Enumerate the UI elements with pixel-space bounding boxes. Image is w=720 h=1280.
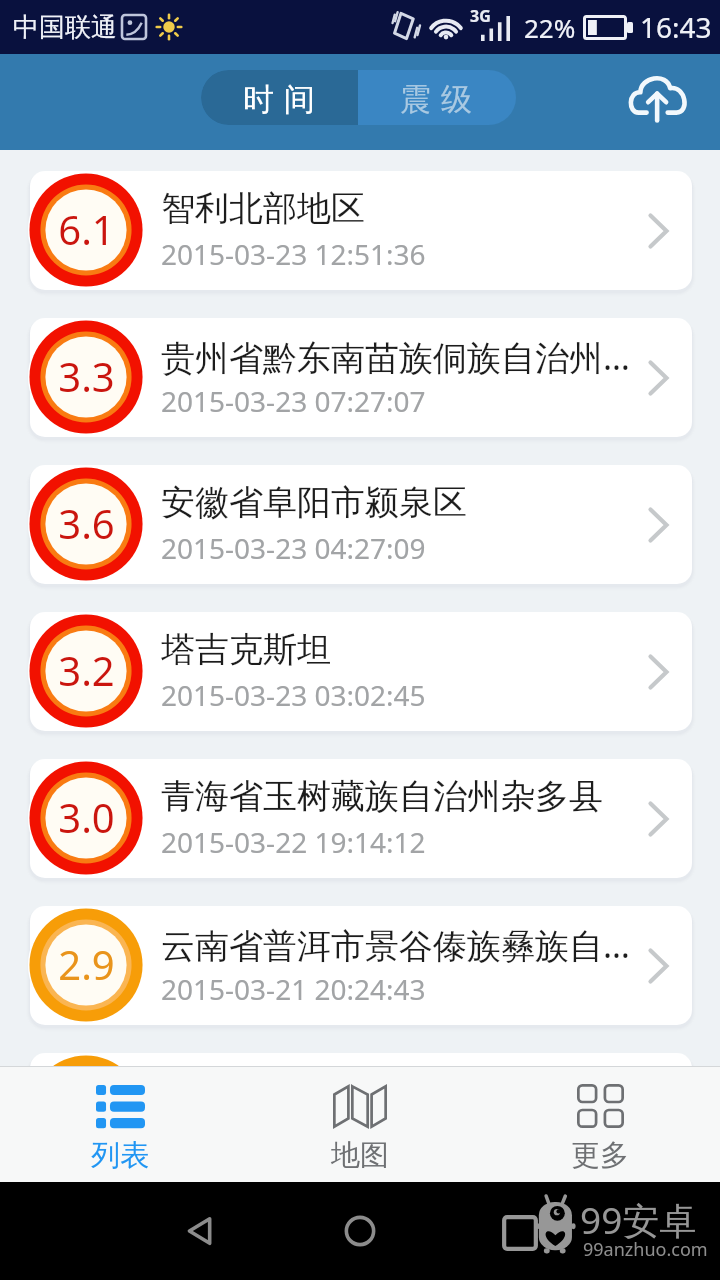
button[interactable]: 时 间 [201,70,358,125]
button[interactable]: 安徽省阜阳市颍泉区 [30,465,692,584]
staticText: 震 级 [400,77,474,119]
staticText: 云南省普洱市景谷傣族彝族自… [161,922,630,968]
button[interactable]: 云南省普洱市景谷傣族彝族自… [30,906,692,1025]
button[interactable]: 贵州省黔东南苗族侗族自治州… [30,318,692,437]
button[interactable]: 新疆维吾尔自治区 [30,1053,692,1172]
staticText: 列表 [91,1137,149,1174]
button[interactable]: 塔吉克斯坦 [30,612,692,731]
staticText: 2015-03-22 19:14:12 [161,823,426,861]
staticText: 更多 [571,1137,629,1174]
staticText: 22% [524,10,576,45]
staticText: 新疆维吾尔自治区 [161,1069,433,1112]
staticText: 99安卓 [580,1194,697,1245]
button[interactable]: Back [178,1209,222,1253]
button[interactable]: Home [338,1209,382,1253]
button[interactable]: 震 级 [358,70,516,125]
staticText: 2.9 [58,937,115,991]
staticText: 99anzhuo.com [583,1237,708,1262]
staticText: 2.8 [58,1084,115,1138]
staticText: 2015-03-23 12:51:36 [161,235,426,273]
staticText: 塔吉克斯坦 [161,628,331,671]
staticText: 贵州省黔东南苗族侗族自治州… [161,334,630,380]
staticText: 青海省玉树藏族自治州杂多县 [161,775,603,818]
staticText: 智利北部地区 [161,187,365,230]
button[interactable]: 智利北部地区 [30,171,692,290]
staticText: 3G [470,5,491,27]
staticText: 中国联通 [13,11,117,44]
staticText: 3.3 [58,349,115,403]
button[interactable]: 更多 [480,1067,720,1182]
staticText: 6.1 [58,202,115,256]
staticText: 2015-03-21 20:24:43 [161,970,426,1008]
staticText: 2015-03-21 10:10:10 [161,1117,426,1155]
staticText: 安徽省阜阳市颍泉区 [161,481,467,524]
staticText: 3.0 [58,790,115,844]
staticText: 3.6 [58,496,115,550]
button[interactable]: 地图 [240,1067,480,1182]
button[interactable]: 青海省玉树藏族自治州杂多县 [30,759,692,878]
staticText: 16:43 [640,8,712,46]
button[interactable]: Upload to cloud [620,58,698,136]
button[interactable]: 列表 [0,1067,240,1182]
staticText: 2015-03-23 07:27:07 [161,382,426,420]
button[interactable]: Recents [498,1211,542,1255]
staticText: 地图 [331,1137,389,1174]
staticText: 2015-03-23 04:27:09 [161,529,426,567]
staticText: 3.2 [58,643,115,697]
staticText: 2015-03-23 03:02:45 [161,676,426,714]
staticText: 时 间 [243,77,317,119]
